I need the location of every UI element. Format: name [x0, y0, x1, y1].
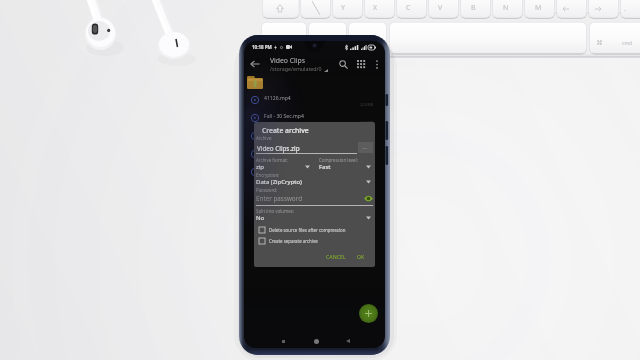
staticText: Password:: [256, 187, 278, 193]
button[interactable]: Grid view: [352, 55, 370, 73]
staticText: N: [503, 3, 509, 13]
staticText: 41126.mp4: [264, 95, 291, 102]
staticText: /storage/emulated/0: [270, 65, 322, 72]
staticText: 10:18 PM: [252, 44, 272, 50]
staticText: ⌘: [596, 39, 603, 47]
button[interactable]: Home: [309, 334, 323, 348]
staticText: zip: [256, 163, 305, 171]
button[interactable]: Winter - 12 Sec.mp4: [244, 127, 385, 145]
staticText: Create archive: [262, 126, 309, 135]
staticText: Summer clip.mp4: [264, 167, 307, 174]
staticText: Video Clips.zip: [257, 144, 300, 153]
staticText: Compression level:: [319, 157, 358, 163]
staticText: Y: [341, 3, 345, 13]
button[interactable]: Add: [359, 304, 378, 323]
staticText: Delete source files after compression: [269, 227, 346, 233]
staticText: V: [438, 3, 443, 13]
staticText: Spring - 8 Sec.mp4: [264, 149, 309, 156]
staticText: No: [256, 214, 366, 222]
staticText: Fall - 30 Sec.mp4: [264, 113, 304, 120]
button[interactable]: Create separate archive: [259, 235, 373, 246]
staticText: ‧: [624, 5, 626, 15]
staticText: Split into volumes:: [256, 208, 294, 214]
staticText: Encryption:: [256, 172, 280, 178]
staticText: X: [373, 3, 378, 13]
staticText: Create separate archive: [269, 238, 318, 244]
staticText: M: [535, 3, 542, 13]
button[interactable]: Fast: [319, 163, 371, 171]
button[interactable]: Data (ZipCrypto): [256, 178, 371, 186]
staticText: 22.4 MB: [360, 138, 373, 143]
staticText: Fast: [319, 163, 366, 171]
staticText: ...: [363, 144, 368, 151]
staticText: Archive format:: [256, 157, 288, 163]
staticText: C: [406, 3, 411, 13]
button[interactable]: Spring - 8 Sec.mp4: [244, 145, 385, 163]
button[interactable]: Fall - 30 Sec.mp4: [244, 109, 385, 127]
staticText: Winter - 12 Sec.mp4: [264, 131, 312, 138]
button[interactable]: Recent apps: [276, 334, 290, 348]
button[interactable]: CANCEL: [324, 251, 348, 262]
button[interactable]: More options: [370, 57, 384, 71]
button[interactable]: [244, 74, 385, 91]
staticText: cmd: [622, 40, 633, 47]
staticText: B: [471, 3, 476, 13]
button[interactable]: zip: [256, 163, 310, 171]
button[interactable]: Summer clip.mp4: [244, 163, 385, 181]
staticText: Enter password: [256, 194, 364, 203]
staticText: OK: [357, 253, 365, 260]
staticText: Data (ZipCrypto): [256, 178, 366, 186]
button[interactable]: OK: [355, 251, 367, 262]
staticText: 22.4 MB: [360, 102, 373, 107]
button[interactable]: Enter password: [256, 194, 373, 203]
button[interactable]: No: [256, 214, 371, 222]
staticText: CANCEL: [326, 253, 346, 260]
staticText: Video Clips: [270, 56, 305, 65]
button[interactable]: Search: [334, 55, 352, 73]
button[interactable]: Back: [341, 334, 355, 348]
staticText: 22.4 MB: [360, 120, 373, 125]
button[interactable]: 41126.mp4: [244, 91, 385, 109]
button[interactable]: Navigate up: [246, 55, 264, 73]
staticText: Archive:: [256, 135, 273, 141]
button[interactable]: Delete source files after compression: [259, 224, 373, 235]
button[interactable]: Browse: [358, 142, 373, 153]
